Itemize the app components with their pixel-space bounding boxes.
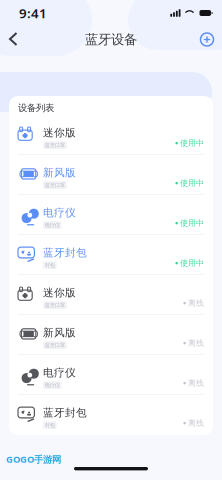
staticText: 离线 — [188, 378, 204, 388]
button[interactable]: 返回 — [0, 27, 28, 52]
staticText: 电疗仪 — [43, 206, 76, 219]
staticText: 使用中 — [180, 178, 204, 188]
staticText: 迷你版 — [43, 126, 76, 139]
staticText: 离线 — [188, 298, 204, 308]
staticText: 迷你版 — [43, 286, 76, 299]
staticText: 蓝牙封包 — [43, 246, 87, 259]
staticText: 新风版 — [43, 166, 76, 179]
staticText: 蓝牙封包 — [43, 406, 87, 419]
staticText: 离线 — [188, 338, 204, 348]
staticText: 电疗仪 — [45, 222, 60, 228]
staticText: 封包 — [45, 422, 55, 428]
staticText: 离线 — [188, 418, 204, 428]
staticText: 设备列表 — [18, 102, 54, 114]
staticText: 电疗仪 — [45, 382, 60, 388]
staticText: 9:41 — [19, 4, 47, 22]
staticText: 蓝牙口罩 — [45, 302, 65, 308]
button[interactable]: 新风版 — [9, 315, 213, 355]
staticText: 使用中 — [180, 138, 204, 148]
button[interactable]: 电疗仪 — [9, 355, 213, 395]
staticText: 使用中 — [180, 258, 204, 268]
button[interactable]: 电疗仪 — [9, 195, 213, 235]
staticText: 蓝牙口罩 — [45, 182, 65, 188]
staticText: GOGO手游网 — [6, 453, 61, 465]
button[interactable]: 蓝牙封包 — [9, 395, 213, 435]
staticText: 新风版 — [43, 326, 76, 339]
button[interactable]: 迷你版 — [9, 275, 213, 315]
button[interactable]: 添加设备 — [192, 25, 222, 53]
staticText: 封包 — [45, 262, 55, 268]
button[interactable]: 新风版 — [9, 155, 213, 195]
staticText: 蓝牙口罩 — [45, 142, 65, 148]
button[interactable]: 迷你版 — [9, 115, 213, 155]
staticText: 电疗仪 — [43, 366, 76, 379]
staticText: 蓝牙设备 — [85, 31, 137, 48]
staticText: 使用中 — [180, 218, 204, 228]
button[interactable]: 蓝牙封包 — [9, 235, 213, 275]
staticText: 蓝牙口罩 — [45, 342, 65, 348]
